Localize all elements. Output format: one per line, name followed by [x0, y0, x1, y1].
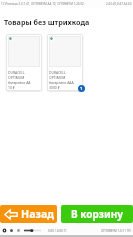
staticText: 2:43:20,8:47:44:60	[106, 2, 132, 6]
button[interactable]: Назад	[0, 205, 57, 223]
button[interactable]: DURACELL OPTIMUM батарейки АА 10 ₽	[6, 34, 42, 91]
staticText: 1С:Розница 3.0.7.41, ОПТИМУМ АА 10, ОПТИ…	[1, 2, 84, 6]
staticText: ОПТИМУМ 1:0:11 П9	[101, 229, 131, 233]
staticText: 1	[80, 86, 83, 91]
button[interactable]: Seek	[24, 228, 41, 233]
staticText: DURACELL OPTIMUM батарейки ААА 3000 ₽	[49, 70, 74, 90]
staticText: В корзину	[71, 207, 123, 221]
button[interactable]: DURACELL OPTIMUM батарейки ААА 3000 ₽	[47, 34, 83, 91]
button[interactable]: Picture in picture	[16, 228, 21, 233]
button[interactable]: Settings	[2, 228, 7, 233]
staticText: DURACELL OPTIMUM батарейки АА 10 ₽	[8, 70, 31, 90]
staticText: 0:00 / 4:00:11	[48, 229, 67, 233]
staticText: Товары без штрихкода	[4, 17, 90, 27]
button[interactable]: Volume	[9, 228, 14, 233]
button[interactable]: В корзину	[61, 205, 133, 223]
other: Назад	[4, 209, 18, 220]
staticText: Назад	[21, 207, 54, 221]
